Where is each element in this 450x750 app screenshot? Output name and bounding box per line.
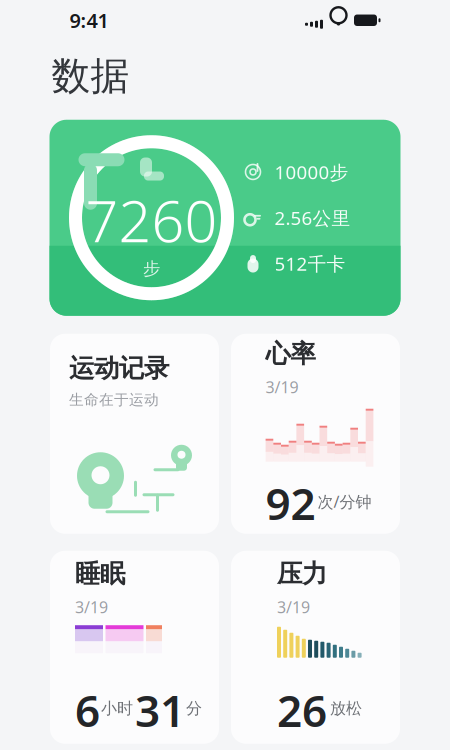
staticText: 7260 [85,182,217,258]
staticText: 512千卡 [274,251,345,276]
staticText: 睡眠 [75,558,125,589]
button[interactable]: 运动记录 [50,334,219,534]
staticText: 生命在于运动 [69,391,159,409]
staticText: 2.56公里 [274,205,350,230]
button[interactable]: 心率 [231,334,400,534]
button[interactable]: 压力 [231,551,400,744]
staticText: 31 [135,681,185,739]
staticText: 压力 [277,558,327,589]
staticText: 运动记录 [69,353,169,384]
staticText: 次/分钟 [317,491,371,512]
staticText: 6 [75,681,100,739]
staticText: 3/19 [277,596,310,618]
staticText: 分 [186,699,202,718]
staticText: 10000步 [274,160,348,184]
staticText: 数据 [51,52,129,100]
staticText: 小时 [101,699,133,718]
staticText: 3/19 [265,376,298,398]
staticText: 心率 [265,338,315,369]
staticText: 放松 [330,699,362,718]
staticText: 92 [265,474,315,532]
button[interactable]: 7260 [49,120,400,316]
button[interactable]: 睡眠 [50,551,219,744]
staticText: 步 [143,258,160,279]
staticText: 9:41 [69,7,108,34]
staticText: 26 [277,681,327,739]
staticText: 3/19 [75,596,108,618]
